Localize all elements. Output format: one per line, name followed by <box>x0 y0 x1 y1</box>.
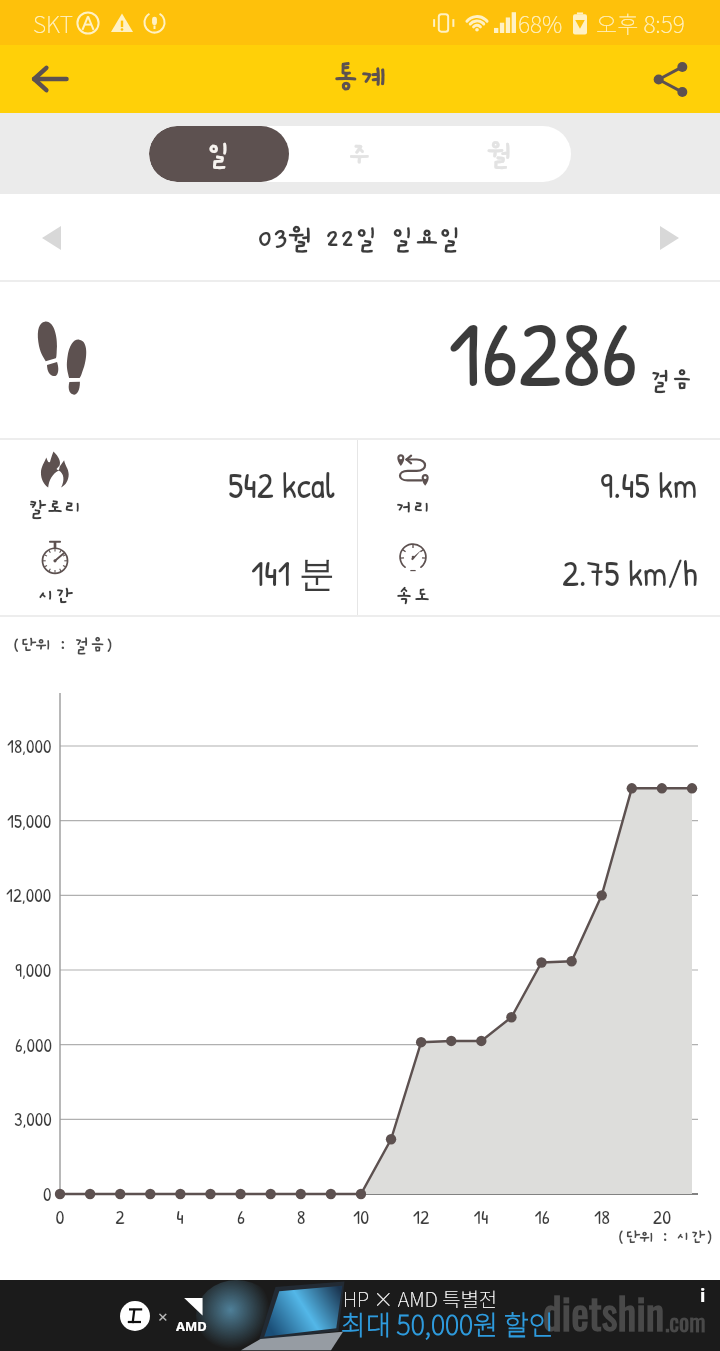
staticText: dietshin <box>543 1281 665 1343</box>
staticText: 542 kcal <box>228 460 335 509</box>
staticText: 주 <box>347 139 372 169</box>
staticText: 9.45 km <box>600 460 698 509</box>
staticText: 68% <box>518 6 563 39</box>
staticText: 15,000 <box>7 808 52 834</box>
staticText: 일 <box>207 139 232 169</box>
staticText: 오후 8:59 <box>596 6 685 39</box>
staticText: 시간 <box>37 585 74 607</box>
staticText: SKT <box>33 6 73 39</box>
staticText: 거리 <box>395 497 432 519</box>
staticText: 3,000 <box>14 1106 52 1132</box>
staticText: × <box>158 1305 168 1328</box>
staticText: 18 <box>582 1203 622 1230</box>
button[interactable]: 거리 <box>358 440 720 528</box>
staticText: .com <box>665 1303 706 1339</box>
button[interactable]: 속도 <box>358 528 720 616</box>
button[interactable]: 시간 <box>0 528 357 616</box>
staticText: 16 <box>522 1203 562 1230</box>
staticText: 10 <box>341 1203 381 1230</box>
button[interactable]: Next day <box>638 207 700 269</box>
staticText: 통계 <box>332 62 388 96</box>
staticText: 속도 <box>395 585 432 607</box>
button[interactable]: × <box>0 1280 720 1351</box>
staticText: 걸음 <box>650 367 693 393</box>
staticText: 12 <box>401 1203 441 1230</box>
button[interactable]: Back <box>16 45 84 113</box>
staticText: 141 분 <box>251 548 335 597</box>
staticText: 0 <box>40 1203 80 1230</box>
staticText: 03월 22일 일요일 <box>257 224 463 253</box>
staticText: HP × AMD 특별전 <box>343 1284 498 1313</box>
staticText: 칼로리 <box>28 497 83 519</box>
staticText: 최대 50,000원 할인 <box>341 1304 554 1343</box>
staticText: 16286 <box>448 290 638 415</box>
staticText: 6 <box>221 1203 261 1230</box>
button[interactable]: 주 <box>289 126 430 182</box>
staticText: 12,000 <box>6 882 52 908</box>
staticText: (단위 : 걸음) <box>12 636 114 655</box>
staticText: 0 <box>43 1181 52 1207</box>
staticText: 6,000 <box>15 1032 52 1058</box>
staticText: 9,000 <box>15 957 52 983</box>
button[interactable]: 월 <box>430 126 571 182</box>
staticText: 4 <box>160 1203 200 1230</box>
staticText: 20 <box>642 1203 682 1230</box>
button[interactable]: 일 <box>149 126 289 182</box>
staticText: 14 <box>461 1203 501 1230</box>
staticText: (단위 : 시간) <box>617 1228 714 1246</box>
button[interactable]: Previous day <box>20 207 82 269</box>
staticText: 18,000 <box>7 733 52 759</box>
staticText: 월 <box>488 139 513 169</box>
button[interactable]: Share <box>636 45 704 113</box>
staticText: 8 <box>281 1203 321 1230</box>
staticText: AMD <box>176 1317 207 1335</box>
button[interactable]: 칼로리 <box>0 440 357 528</box>
staticText: i <box>700 1283 706 1308</box>
staticText: 2 <box>100 1203 140 1230</box>
staticText: 2.75 km/h <box>562 548 698 597</box>
